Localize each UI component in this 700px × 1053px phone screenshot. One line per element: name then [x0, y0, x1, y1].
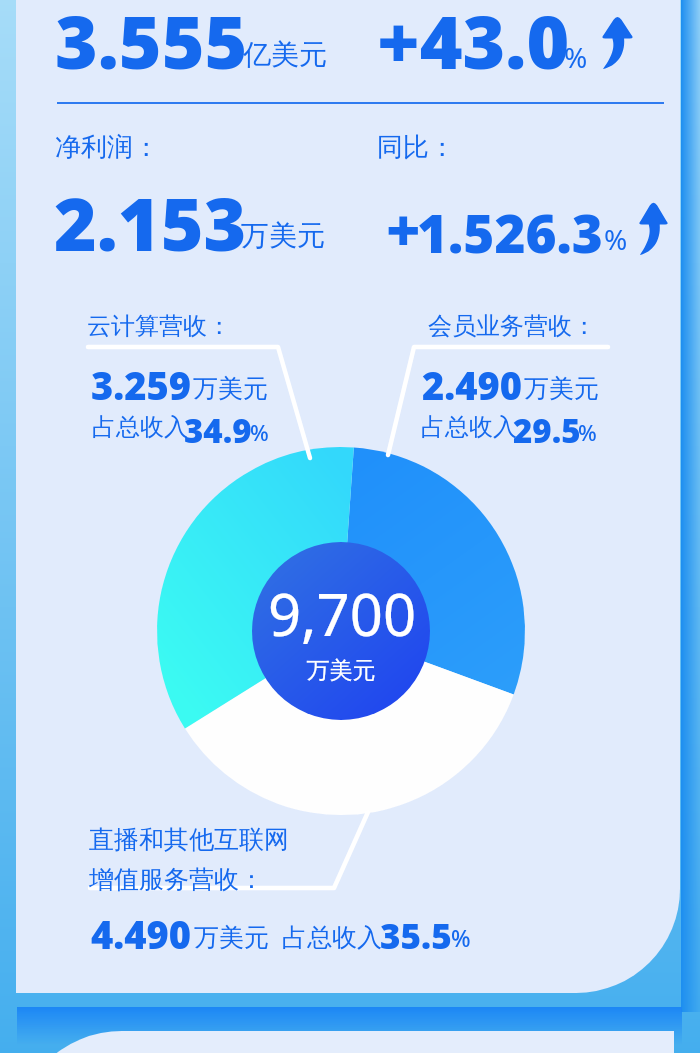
staticText: 万美元: [250, 656, 432, 1053]
staticText: 会员业务营收：: [428, 311, 596, 341]
staticText: %: [578, 417, 597, 447]
staticText: %: [250, 417, 269, 447]
staticText: 万美元: [194, 922, 269, 953]
staticText: 34.9: [184, 408, 252, 453]
staticText: 净利润：: [55, 131, 159, 164]
staticText: +43.0: [377, 0, 570, 90]
staticText: %: [564, 38, 588, 76]
staticText: 1.526.3: [417, 196, 603, 268]
staticText: %: [451, 922, 471, 953]
staticText: 占总收入: [421, 412, 517, 442]
staticText: +: [386, 189, 421, 269]
staticText: 35.5: [380, 912, 452, 960]
staticText: 29.5: [513, 408, 581, 453]
staticText: 3.555: [55, 0, 248, 90]
staticText: 增值服务营收：: [89, 864, 264, 895]
staticText: 9,700: [250, 574, 434, 1053]
staticText: 4.490: [91, 908, 192, 960]
staticText: 万美元: [524, 373, 599, 404]
staticText: 万美元: [193, 373, 268, 404]
staticText: 云计算营收：: [87, 311, 231, 341]
staticText: 占总收入: [92, 412, 188, 442]
staticText: 占总收入: [282, 922, 382, 953]
staticText: 万美元: [241, 218, 325, 253]
staticText: %: [604, 220, 628, 258]
staticText: 2.153: [54, 173, 247, 272]
staticText: 亿美元: [243, 37, 327, 72]
staticText: 同比：: [377, 131, 455, 164]
staticText: 2.490: [422, 359, 523, 411]
staticText: 3.259: [91, 359, 192, 411]
staticText: 直播和其他互联网: [89, 824, 289, 855]
